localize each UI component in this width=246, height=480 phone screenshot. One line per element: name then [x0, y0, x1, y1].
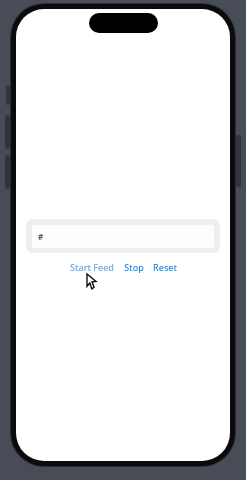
- staticText: Start Feed: [70, 261, 114, 273]
- staticText: Stop: [124, 261, 144, 273]
- other: Silent switch: [6, 85, 10, 105]
- other: Volume up: [5, 115, 10, 149]
- button[interactable]: Reset: [152, 260, 178, 274]
- staticText: Reset: [153, 261, 177, 273]
- button[interactable]: Stop: [123, 260, 145, 274]
- other: Volume down: [5, 155, 10, 189]
- button[interactable]: Start Feed: [69, 260, 115, 274]
- staticText: #: [38, 231, 44, 242]
- button[interactable]: #: [26, 219, 220, 253]
